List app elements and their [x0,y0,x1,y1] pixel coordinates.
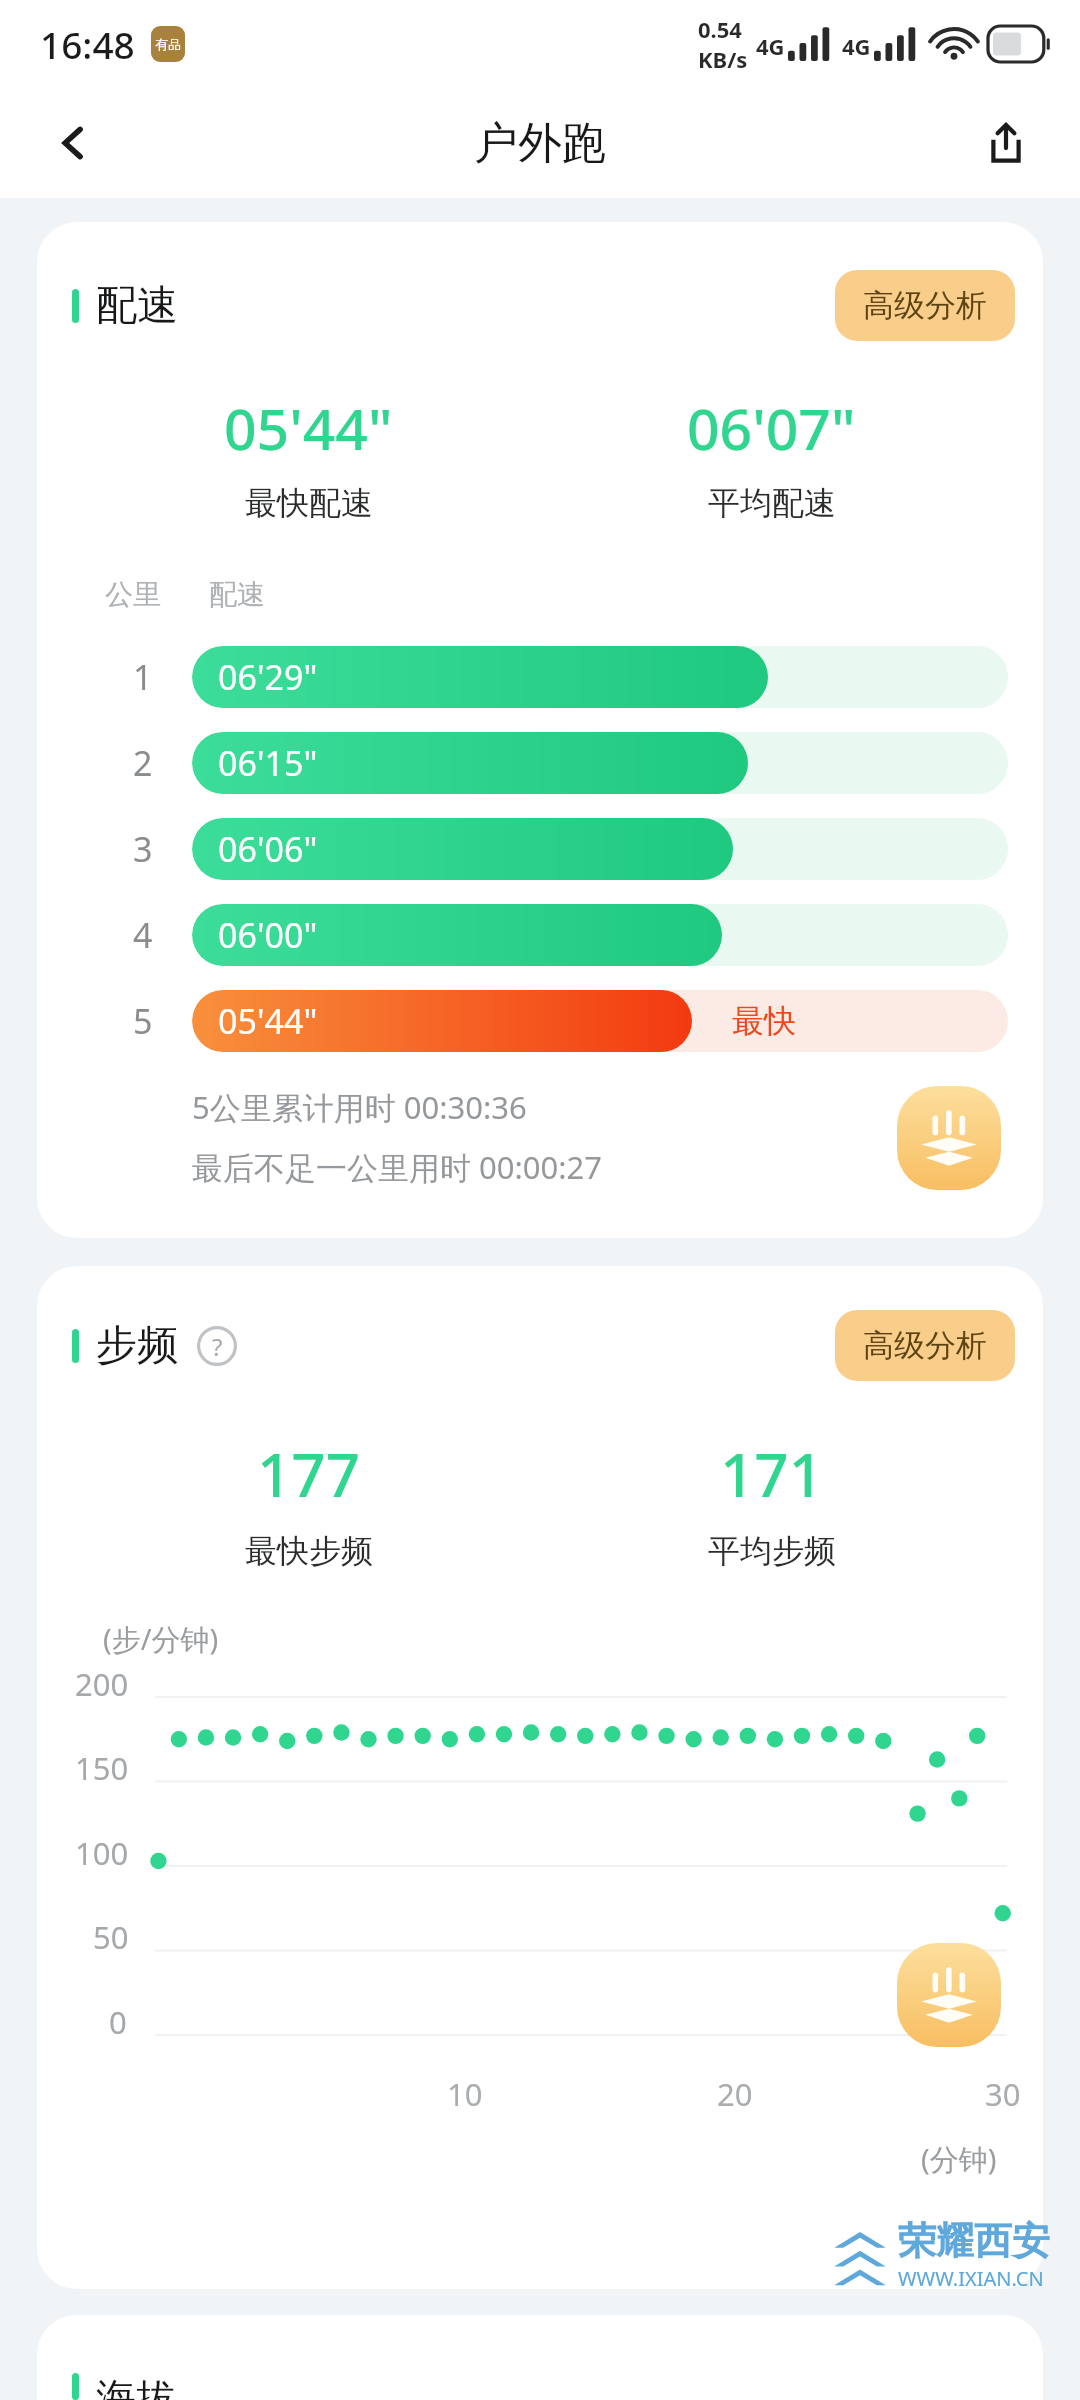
staticText: 最快步频 [245,1531,373,1571]
staticText: 10 [447,2073,483,2115]
button[interactable]: 分享 [968,105,1044,181]
staticText: 0 [109,2001,127,2043]
staticText: 最后不足一公里用时 00:00:27 [192,1146,603,1188]
staticText: 06'00" [218,912,318,958]
staticText: 平均配速 [708,483,836,523]
staticText: 200 [75,1663,129,1705]
staticText: 户外跑 [474,116,606,171]
staticText: 步频 [96,1320,178,1372]
staticText: (分钟) [921,2139,997,2179]
staticText: 配速 [96,280,178,332]
staticText: 05'44" [218,998,318,1044]
staticText: 06'15" [218,740,318,786]
staticText: 平均步频 [708,1531,836,1571]
button[interactable]: 返回 [36,105,112,181]
staticText: 5公里累计用时 00:30:36 [192,1086,527,1128]
staticText: 177 [257,1433,360,1515]
staticText: 06'06" [218,826,318,872]
button[interactable]: 05'44" [192,990,1008,1052]
staticText: 150 [75,1747,129,1789]
staticText: ? [212,1330,223,1363]
staticText: 50 [93,1916,129,1958]
staticText: 3 [133,826,153,872]
staticText: 海拔 [96,2373,176,2400]
staticText: KB/s [698,44,748,74]
button[interactable]: 06'29" [192,646,1008,708]
staticText: 4G [756,31,785,61]
staticText: 公里 [105,577,161,612]
staticText: 4 [133,912,153,958]
staticText: 配速 [209,577,265,612]
staticText: 100 [75,1832,129,1874]
staticText: 16:48 [40,19,135,69]
button[interactable]: 下载 [897,1086,1001,1190]
staticText: 20 [717,2073,753,2115]
button[interactable]: 06'06" [192,818,1008,880]
staticText: 0.54 [698,14,742,44]
staticText: 高级分析 [863,1326,987,1365]
staticText: 05'44" [224,389,393,467]
staticText: 最快 [732,1001,796,1041]
staticText: 06'29" [218,654,318,700]
staticText: 5 [133,998,153,1044]
staticText: 有品 [155,36,181,52]
button[interactable]: 06'15" [192,732,1008,794]
staticText: 高级分析 [863,286,987,325]
staticText: 2 [133,740,153,786]
staticText: 最快配速 [245,483,373,523]
button[interactable]: 高级分析 [835,1310,1015,1381]
button[interactable]: 06'00" [192,904,1008,966]
button[interactable]: 帮助 [196,1325,238,1367]
staticText: WWW.IXIAN.CN [898,2265,1044,2292]
staticText: 荣耀西安 [898,2217,1050,2265]
button[interactable]: 下载 [897,1943,1001,2047]
staticText: 171 [720,1433,823,1515]
staticText: 1 [133,654,153,700]
staticText: 30 [985,2073,1021,2115]
staticText: 4G [842,31,871,61]
button[interactable]: 高级分析 [835,270,1015,341]
staticText: 06'07" [687,389,856,467]
staticText: (步/分钟) [103,1619,219,1659]
